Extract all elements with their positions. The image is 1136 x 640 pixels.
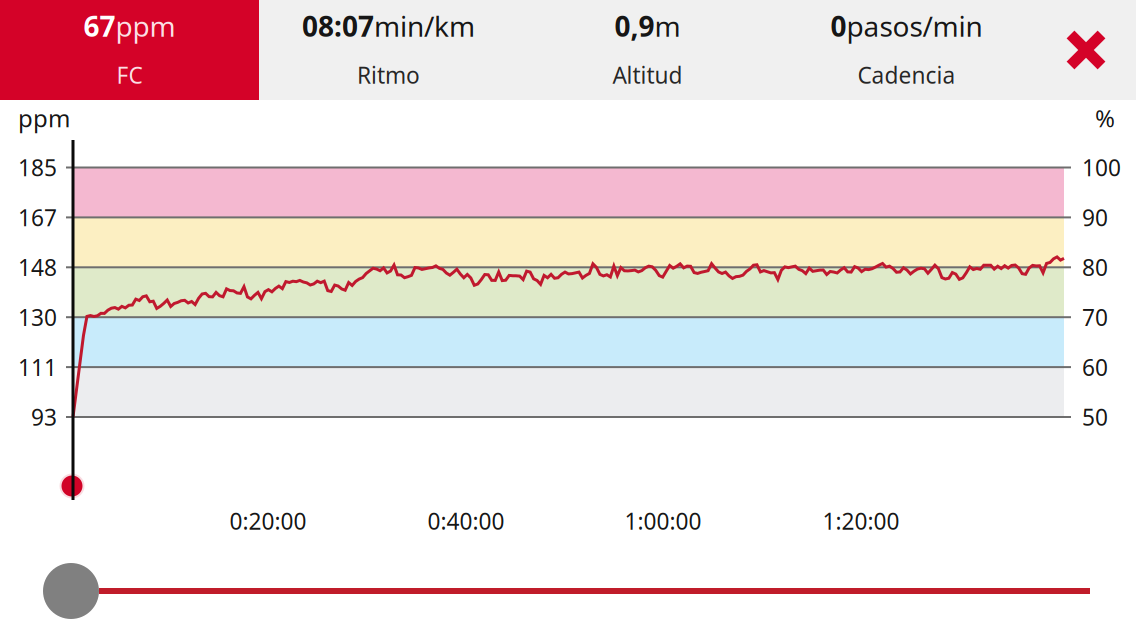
button[interactable]: Close: [1036, 0, 1136, 100]
staticText: 130: [18, 302, 57, 332]
staticText: 93: [31, 402, 57, 432]
staticText: Ritmo: [357, 60, 420, 90]
staticText: ppm: [115, 7, 175, 45]
button[interactable]: 08:07: [259, 0, 518, 100]
staticText: 1:00:00: [624, 506, 701, 536]
staticText: Altitud: [612, 60, 682, 90]
staticText: pasos/min: [846, 7, 982, 45]
staticText: 111: [18, 352, 57, 382]
button[interactable]: 0: [777, 0, 1036, 100]
staticText: 148: [18, 252, 57, 282]
staticText: 100: [1082, 152, 1121, 182]
staticText: 08:07: [302, 7, 374, 45]
staticText: FC: [116, 60, 142, 90]
button[interactable]: Scrub position: [43, 563, 99, 619]
staticText: 80: [1082, 252, 1108, 282]
staticText: 0:40:00: [427, 506, 504, 536]
staticText: 0: [830, 7, 846, 45]
staticText: 60: [1082, 352, 1108, 382]
staticText: 1:20:00: [822, 506, 899, 536]
button[interactable]: 67: [0, 0, 259, 100]
staticText: 90: [1082, 202, 1108, 232]
staticText: 185: [18, 152, 57, 182]
staticText: 70: [1082, 302, 1108, 332]
staticText: 0,9: [614, 7, 654, 45]
staticText: 67: [83, 7, 115, 45]
staticText: 0:20:00: [229, 506, 306, 536]
staticText: Cadencia: [857, 60, 955, 90]
staticText: %: [1095, 102, 1115, 134]
staticText: ppm: [18, 102, 70, 134]
staticText: min/km: [374, 7, 475, 45]
staticText: 167: [18, 202, 57, 232]
button[interactable]: 0,9: [518, 0, 777, 100]
staticText: 50: [1082, 402, 1108, 432]
staticText: m: [654, 7, 680, 45]
